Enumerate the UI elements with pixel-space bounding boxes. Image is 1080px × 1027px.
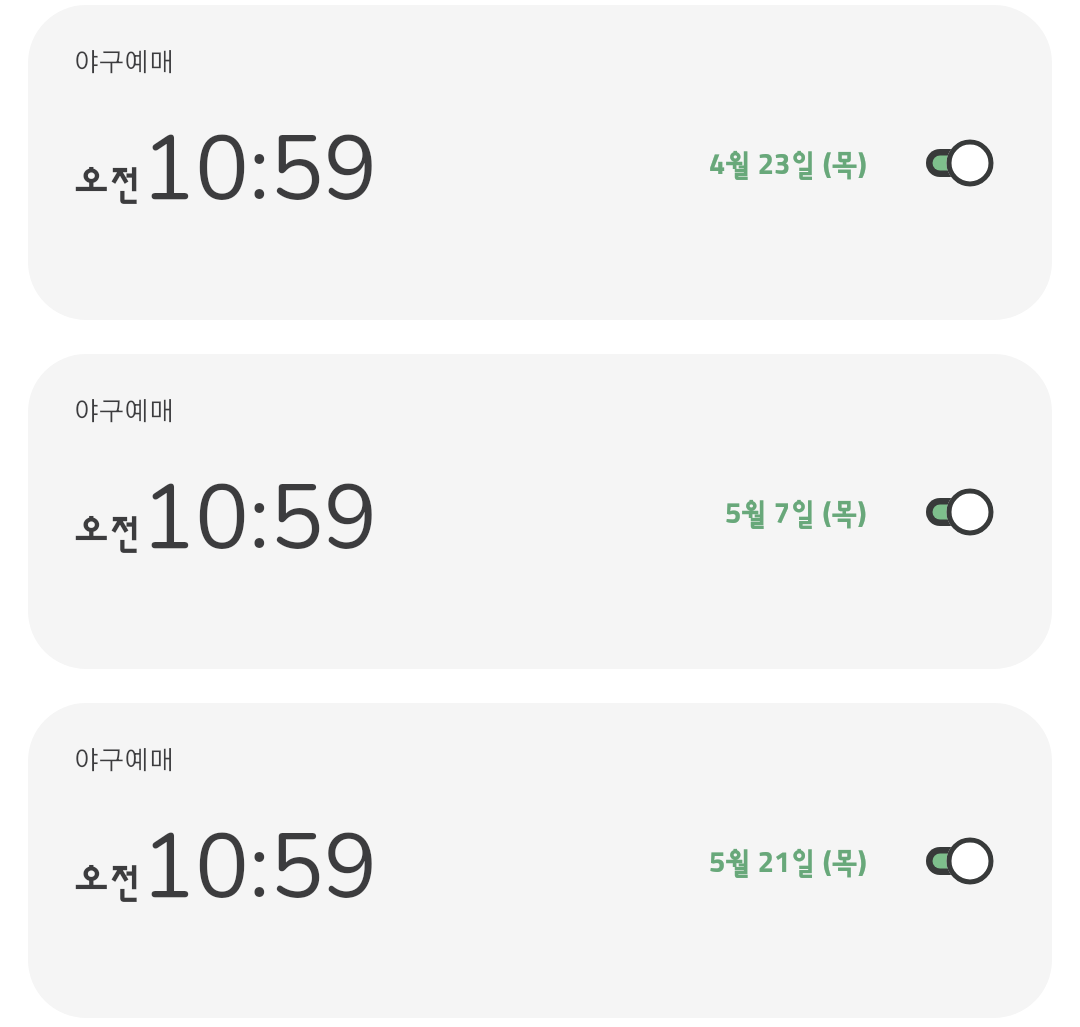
- button[interactable]: Alarm on: [926, 837, 994, 885]
- staticText: 5월 7일 (목): [725, 500, 867, 529]
- staticText: 야구예매: [74, 50, 174, 76]
- staticText: 오전: [74, 516, 143, 554]
- staticText: 오전: [74, 167, 143, 205]
- staticText: 4월 23일 (목): [709, 151, 867, 180]
- staticText: 10:59: [141, 108, 378, 231]
- staticText: 10:59: [141, 806, 378, 929]
- staticText: 야구예매: [74, 748, 174, 774]
- staticText: 5월 21일 (목): [709, 849, 867, 878]
- staticText: 야구예매: [74, 399, 174, 425]
- button[interactable]: 야구예매: [28, 354, 1052, 669]
- button[interactable]: 야구예매: [28, 5, 1052, 320]
- button[interactable]: Alarm on: [926, 139, 994, 187]
- staticText: 오전: [74, 865, 143, 903]
- staticText: 10:59: [141, 457, 378, 580]
- button[interactable]: Alarm on: [926, 488, 994, 536]
- button[interactable]: 야구예매: [28, 703, 1052, 1018]
